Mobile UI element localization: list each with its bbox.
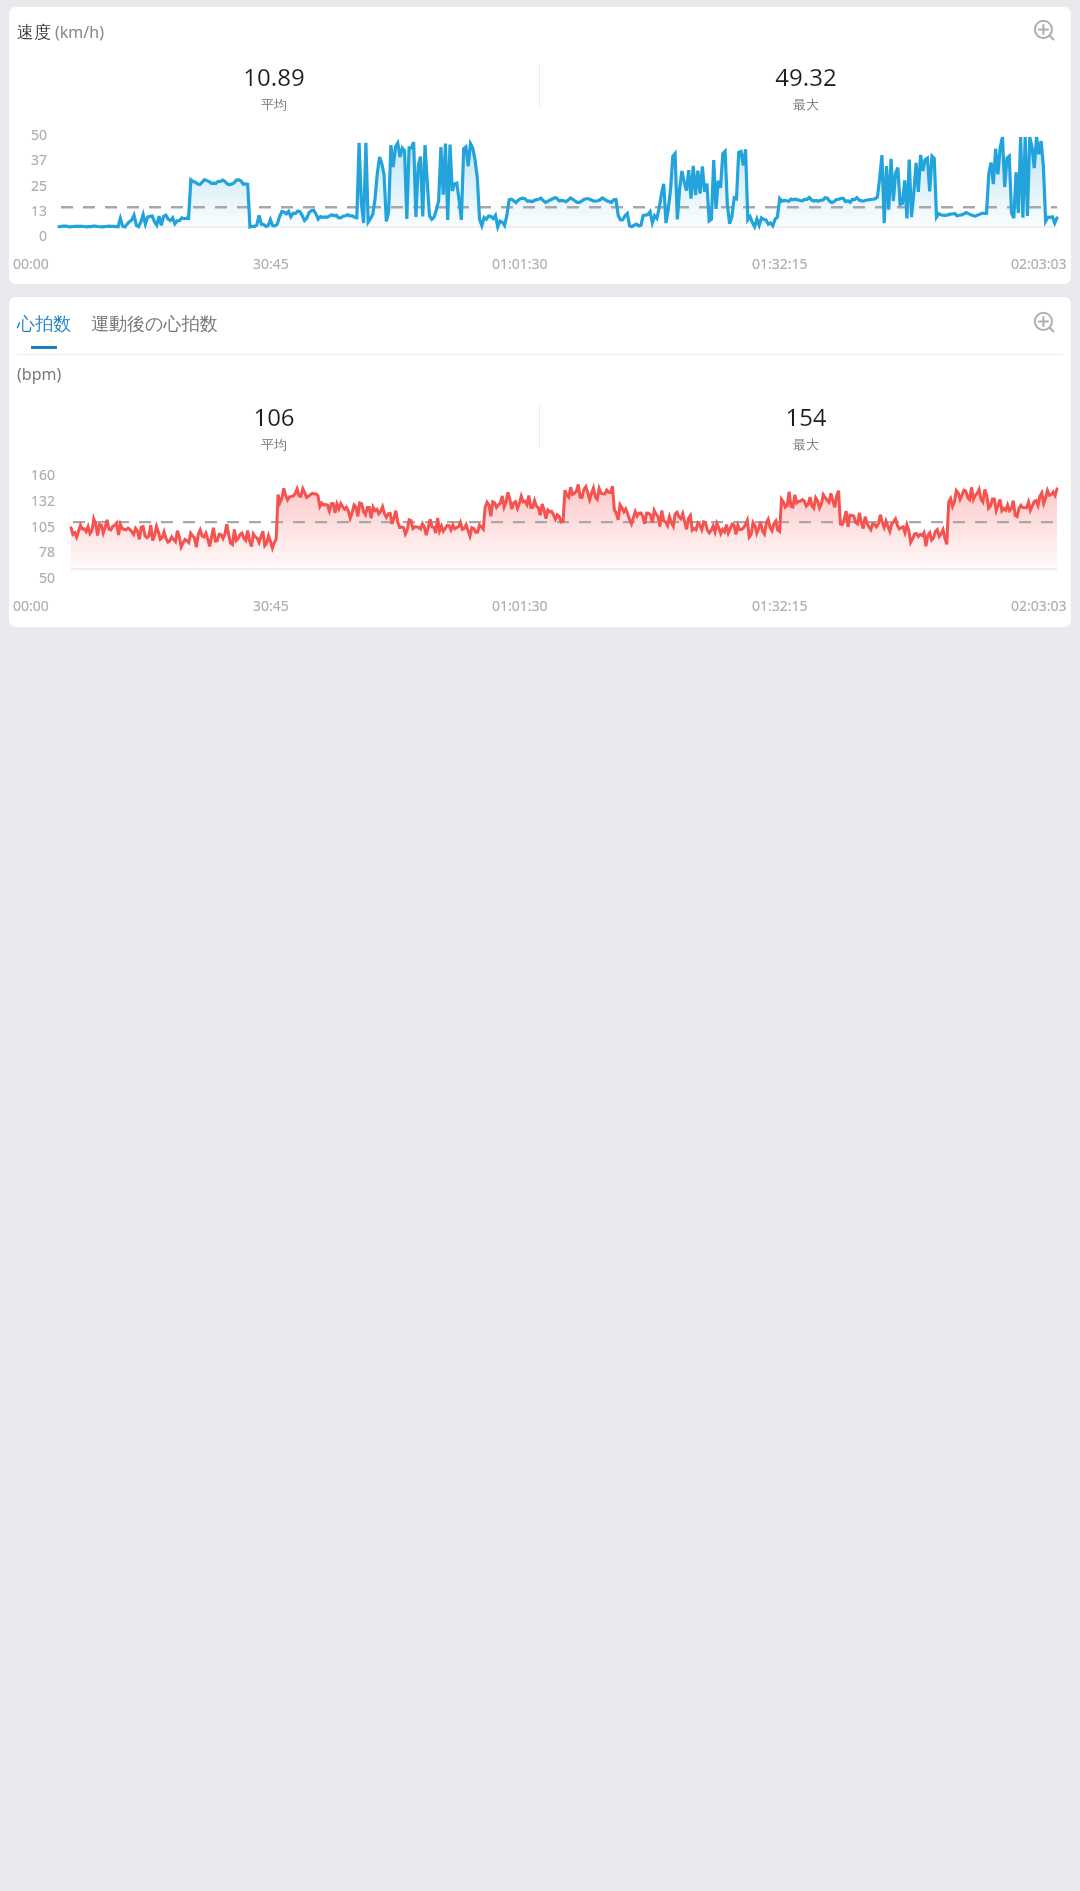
staticText: 00:00	[13, 254, 49, 273]
staticText: 01:32:15	[752, 596, 808, 615]
staticText: 運動後の心拍数	[91, 313, 218, 336]
staticText: 30:45	[253, 596, 289, 615]
button[interactable]: Zoom in	[1029, 15, 1063, 49]
staticText: 13	[30, 201, 47, 220]
staticText: 50	[30, 125, 47, 144]
staticText: 105	[30, 517, 55, 536]
staticText: 78	[38, 542, 55, 561]
staticText: 平均	[261, 436, 287, 452]
staticText: 01:32:15	[752, 254, 808, 273]
staticText: 0	[38, 226, 47, 245]
staticText: 50	[38, 568, 55, 587]
staticText: 10.89	[243, 60, 305, 93]
staticText: 02:03:03	[1011, 254, 1067, 273]
staticText: 速度	[17, 22, 51, 43]
staticText: 30:45	[253, 254, 289, 273]
staticText: 01:01:30	[492, 254, 548, 273]
staticText: (bpm)	[17, 363, 62, 385]
staticText: 160	[30, 465, 55, 484]
staticText: 最大	[793, 96, 819, 112]
staticText: (km/h)	[55, 21, 104, 43]
staticText: 106	[253, 400, 295, 433]
staticText: 25	[30, 176, 47, 195]
staticText: 01:01:30	[492, 596, 548, 615]
staticText: 154	[785, 400, 827, 433]
staticText: 最大	[793, 436, 819, 452]
button[interactable]: 心拍数	[17, 313, 71, 349]
button[interactable]: 運動後の心拍数	[91, 313, 218, 349]
staticText: 132	[30, 491, 55, 510]
button[interactable]: Zoom in	[1029, 307, 1063, 341]
staticText: 心拍数	[17, 313, 71, 336]
staticText: 02:03:03	[1011, 596, 1067, 615]
staticText: 00:00	[13, 596, 49, 615]
staticText: 平均	[261, 96, 287, 112]
staticText: 49.32	[775, 60, 837, 93]
staticText: 37	[30, 150, 47, 169]
